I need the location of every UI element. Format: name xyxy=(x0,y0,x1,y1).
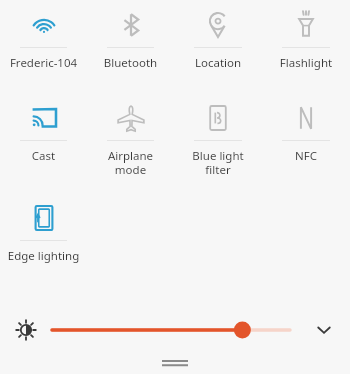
button[interactable]: Flashlight xyxy=(262,0,350,93)
staticText: Blue light filter xyxy=(174,148,262,177)
staticText: Edge lighting xyxy=(0,248,87,264)
other: NFC xyxy=(289,101,323,135)
other: Airplane mode xyxy=(114,101,148,135)
staticText: NFC xyxy=(262,148,350,164)
other: Cast xyxy=(27,101,61,135)
button[interactable]: Edge lighting xyxy=(0,193,87,289)
staticText: Flashlight xyxy=(262,55,350,71)
other: Location xyxy=(201,8,235,42)
button[interactable]: Brightness xyxy=(0,308,52,352)
button[interactable]: NFC xyxy=(262,93,350,193)
staticText: Bluetooth xyxy=(87,55,174,71)
other: Bluetooth xyxy=(114,8,148,42)
other: Blue light filter xyxy=(201,101,235,135)
button[interactable]: Frederic-104 xyxy=(0,0,87,93)
other: Edge lighting xyxy=(27,201,61,235)
staticText: Location xyxy=(174,55,262,71)
staticText: Cast xyxy=(0,148,87,164)
other: Flashlight xyxy=(289,8,323,42)
button[interactable] xyxy=(52,308,298,352)
button[interactable]: Cast xyxy=(0,93,87,193)
other: Frederic-104 xyxy=(27,8,61,42)
button[interactable]: Blue light filter xyxy=(174,93,262,193)
button[interactable]: Bluetooth xyxy=(87,0,174,93)
staticText: Airplane mode xyxy=(87,148,174,177)
staticText: Frederic-104 xyxy=(0,55,87,71)
button[interactable]: Airplane mode xyxy=(87,93,174,193)
button[interactable]: Expand xyxy=(298,308,350,352)
button[interactable]: Location xyxy=(174,0,262,93)
